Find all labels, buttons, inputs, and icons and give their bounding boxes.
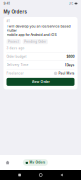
staticText: Paul Myra — [58, 71, 74, 75]
staticText: I will develop you an ios/service based … — [6, 24, 70, 37]
staticText: Pending Order — [24, 40, 46, 43]
staticText: My Orders — [30, 161, 46, 164]
staticText: #1 — [6, 19, 9, 23]
button[interactable]: Home — [2, 155, 13, 170]
staticText: Project — [8, 40, 19, 43]
staticText: 9:41 — [3, 2, 9, 5]
staticText: Order budget — [6, 55, 26, 58]
staticText: $800 — [66, 55, 74, 58]
button[interactable]: My Orders — [23, 159, 48, 166]
staticText: 1 Days — [64, 63, 74, 67]
staticText: LTE — [68, 2, 73, 5]
staticText: 3 days ago — [6, 46, 24, 50]
staticText: Delivery Time — [6, 63, 28, 67]
staticText: Freelancer — [6, 71, 23, 75]
button[interactable]: View Order — [6, 78, 74, 86]
staticText: My Orders — [3, 9, 26, 15]
staticText: View Order — [31, 80, 49, 84]
